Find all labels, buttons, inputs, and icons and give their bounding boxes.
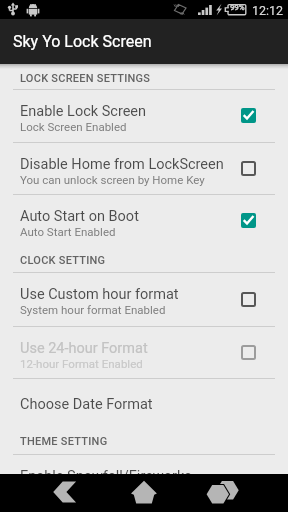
button[interactable]: Use 24-hour Format — [0, 326, 288, 378]
staticText: Disable Home from LockScreen — [20, 156, 224, 173]
staticText: 99% — [230, 3, 245, 12]
staticText: LOCK SCREEN SETTINGS — [20, 72, 151, 85]
staticText: Use Custom hour format — [20, 286, 179, 303]
staticText: CLOCK SETTING — [20, 254, 106, 267]
button[interactable]: Auto Start on Boot — [0, 194, 288, 246]
button[interactable]: Recent apps — [196, 474, 250, 512]
staticText: 12:12 — [252, 3, 284, 18]
button[interactable]: Back — [38, 474, 92, 512]
staticText: Sky Yo Lock Screen — [13, 32, 152, 51]
staticText: Lock Screen Enabled — [20, 120, 127, 133]
staticText: 12-hour Format Enabled — [20, 357, 143, 370]
staticText: Auto Start on Boot — [20, 208, 139, 225]
staticText: Auto Start Enabled — [20, 225, 116, 238]
staticText: Enable Snowfall/Fireworks — [20, 468, 192, 485]
staticText: Snowfall Enabled — [20, 485, 109, 498]
button[interactable]: Use Custom hour format — [0, 272, 288, 326]
staticText: Use 24-hour Format — [20, 340, 148, 357]
staticText: THEME SETTING — [20, 435, 108, 448]
staticText: Enable Lock Screen — [20, 103, 147, 120]
button[interactable]: Enable Snowfall/Fireworks — [0, 454, 288, 512]
staticText: You can unlock screen by Home Key — [20, 173, 205, 186]
button[interactable]: Choose Date Format — [0, 378, 288, 429]
button[interactable]: Home — [117, 474, 171, 512]
button[interactable]: Enable Lock Screen — [0, 89, 288, 142]
staticText: Choose Date Format — [20, 396, 153, 413]
button[interactable]: Disable Home from LockScreen — [0, 142, 288, 194]
staticText: System hour format Enabled — [20, 303, 166, 316]
